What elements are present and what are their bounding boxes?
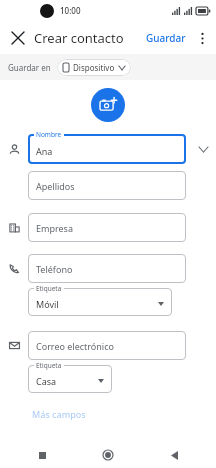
button[interactable]: Más campos — [28, 405, 90, 423]
button[interactable]: Aplicaciones recientes — [32, 445, 52, 465]
staticText: Guardar en — [8, 62, 51, 73]
staticText: Móvil — [36, 298, 59, 310]
staticText: Nombre — [36, 130, 62, 139]
button[interactable]: Inicio — [98, 445, 118, 465]
staticText: Teléfono — [36, 263, 73, 275]
button[interactable]: Añadir foto — [91, 88, 125, 122]
staticText: 10:00 — [60, 5, 81, 16]
staticText: Guardar — [146, 31, 186, 45]
button[interactable]: Empresa — [28, 213, 186, 242]
staticText: Casa — [36, 375, 57, 387]
staticText: Empresa — [36, 222, 73, 234]
button[interactable]: Más opciones — [191, 27, 213, 49]
staticText: Etiqueta — [36, 284, 62, 293]
staticText: Correo electrónico — [36, 340, 114, 352]
button[interactable]: Ana — [28, 134, 186, 164]
button[interactable]: Guardar — [141, 28, 191, 48]
staticText: Dispositivo — [73, 62, 115, 73]
button[interactable]: Apellidos — [28, 171, 186, 200]
staticText: Etiqueta — [36, 361, 62, 370]
staticText: Crear contacto — [34, 29, 124, 47]
button[interactable]: Expandir nombre — [194, 140, 212, 158]
button[interactable]: Dispositivo — [57, 59, 131, 76]
staticText: Más campos — [32, 408, 86, 420]
button[interactable]: Cerrar — [6, 26, 30, 50]
staticText: Apellidos — [36, 180, 75, 192]
button[interactable]: Teléfono — [28, 254, 186, 283]
button[interactable]: Móvil — [28, 288, 172, 316]
staticText: Ana — [36, 145, 53, 157]
button[interactable]: Casa — [28, 365, 112, 393]
button[interactable]: Correo electrónico — [28, 331, 186, 360]
button[interactable]: Atrás — [164, 445, 184, 465]
